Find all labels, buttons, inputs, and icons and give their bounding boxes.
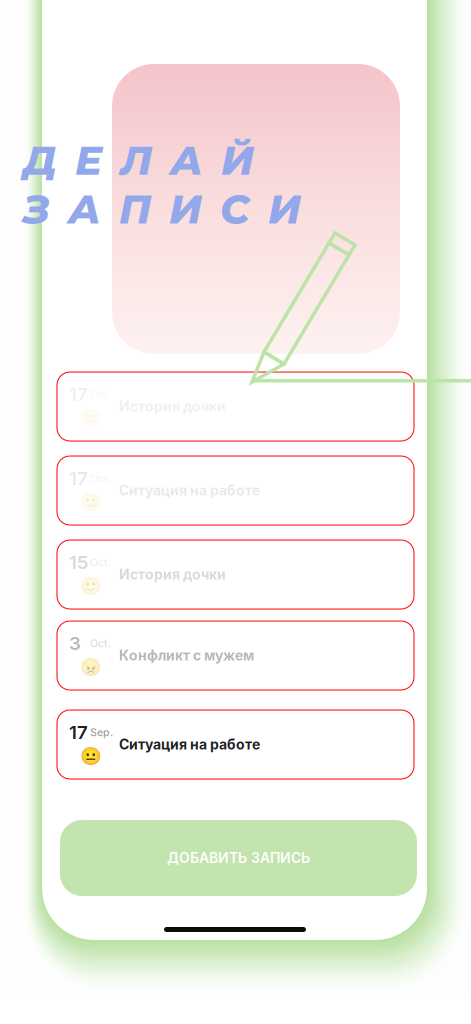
staticText: 😐 — [80, 746, 102, 766]
staticText: Конфликт с мужем — [119, 647, 254, 664]
staticText: Ситуация на работе — [119, 482, 260, 499]
button[interactable]: 3 — [57, 621, 414, 690]
staticText: ЗАПИСИ — [23, 185, 301, 234]
button[interactable]: 15 — [57, 540, 414, 609]
staticText: 17 — [69, 467, 88, 490]
staticText: 15 — [69, 551, 88, 574]
staticText: 🙂 — [80, 492, 102, 512]
staticText: Oct. — [90, 472, 111, 485]
staticText: Oct. — [90, 637, 111, 650]
staticText: 17 — [69, 383, 88, 406]
staticText: История дочки — [119, 566, 226, 583]
staticText: 🙂 — [80, 408, 102, 428]
staticText: 😠 — [80, 657, 102, 677]
staticText: 3 — [69, 632, 81, 655]
button[interactable]: ДОБАВИТЬ ЗАПИСЬ — [60, 820, 417, 896]
button[interactable]: 17 — [57, 456, 414, 525]
button[interactable]: 17 — [57, 710, 414, 779]
staticText: Sep. — [90, 726, 113, 739]
staticText: ДОБАВИТЬ ЗАПИСЬ — [167, 849, 310, 866]
staticText: 🙂 — [80, 576, 102, 596]
staticText: Oct. — [90, 556, 111, 569]
staticText: 17 — [69, 721, 88, 744]
staticText: ДЕЛАЙ — [23, 136, 254, 185]
button[interactable]: 17 — [57, 372, 414, 441]
staticText: Ситуация на работе — [119, 736, 260, 753]
staticText: История дочки — [119, 398, 226, 415]
